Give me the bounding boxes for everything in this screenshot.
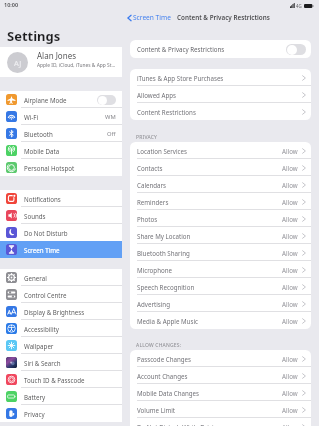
- staticText: WM: [105, 113, 116, 121]
- button[interactable]: Airplane Mode: [0, 91, 122, 108]
- button[interactable]: Account Changes: [130, 367, 311, 384]
- button[interactable]: Content Restrictions: [130, 103, 311, 120]
- staticText: Sounds: [24, 212, 122, 220]
- button[interactable]: Microphone: [130, 261, 311, 278]
- button[interactable]: Privacy: [0, 405, 122, 422]
- staticText: General: [24, 274, 122, 282]
- staticText: Allow: [282, 423, 298, 426]
- staticText: Calendars: [137, 181, 282, 189]
- button[interactable]: Control Centre: [0, 286, 122, 303]
- button[interactable]: Content & Privacy Restrictions: [130, 40, 311, 58]
- staticText: Apple ID, iCloud, iTunes & App St...: [37, 62, 116, 69]
- staticText: Allow: [282, 389, 298, 397]
- button[interactable]: Advertising: [130, 295, 311, 312]
- staticText: Wallpaper: [24, 342, 122, 350]
- staticText: Volume Limit: [137, 406, 282, 414]
- button[interactable]: Photos: [130, 210, 311, 227]
- staticText: Display & Brightness: [24, 308, 122, 316]
- staticText: Do Not Disturb: [24, 229, 122, 237]
- staticText: PRIVACY: [136, 134, 158, 141]
- staticText: Privacy: [24, 410, 122, 418]
- button[interactable]: Display & Brightness: [0, 303, 122, 320]
- staticText: Allow: [282, 266, 298, 274]
- button[interactable]: Speech Recognition: [130, 278, 311, 295]
- staticText: Allow: [282, 372, 298, 380]
- button[interactable]: Wallpaper: [0, 337, 122, 354]
- button[interactable]: Do Not Disturb While Driving: [130, 418, 311, 426]
- staticText: Personal Hotspot: [24, 164, 122, 172]
- staticText: Reminders: [137, 198, 282, 206]
- staticText: Allow: [282, 355, 298, 363]
- button[interactable]: Do Not Disturb: [0, 224, 122, 241]
- staticText: Account Changes: [137, 372, 282, 380]
- staticText: Media & Apple Music: [137, 317, 282, 325]
- button[interactable]: Mobile Data Changes: [130, 384, 311, 401]
- staticText: Mobile Data: [24, 147, 122, 155]
- button[interactable]: Personal Hotspot: [0, 159, 122, 176]
- button[interactable]: Allowed Apps: [130, 86, 311, 103]
- staticText: Allow: [282, 317, 298, 325]
- button[interactable]: Touch ID & Passcode: [0, 371, 122, 388]
- staticText: Allow: [282, 147, 298, 155]
- button[interactable]: Media & Apple Music: [130, 312, 311, 329]
- button[interactable]: Notifications: [0, 190, 122, 207]
- staticText: Allow: [282, 181, 298, 189]
- staticText: Photos: [137, 215, 282, 223]
- staticText: Notifications: [24, 195, 122, 203]
- staticText: Bluetooth: [24, 130, 107, 138]
- button[interactable]: Airplane Mode toggle: [97, 95, 116, 105]
- staticText: Allow: [282, 215, 298, 223]
- button[interactable]: Battery: [0, 388, 122, 405]
- button[interactable]: Reminders: [130, 193, 311, 210]
- button[interactable]: Calendars: [130, 176, 311, 193]
- button[interactable]: Screen Time: [127, 13, 171, 22]
- staticText: Screen Time: [133, 13, 171, 22]
- staticText: AJ: [14, 58, 22, 68]
- staticText: Allow: [282, 406, 298, 414]
- staticText: Off: [107, 130, 116, 138]
- staticText: Battery: [24, 393, 122, 401]
- button[interactable]: Passcode Changes: [130, 350, 311, 367]
- staticText: Wi-Fi: [24, 113, 105, 121]
- button[interactable]: AJ: [0, 47, 122, 77]
- button[interactable]: Bluetooth: [0, 125, 122, 142]
- button[interactable]: Bluetooth Sharing: [130, 244, 311, 261]
- button[interactable]: Mobile Data: [0, 142, 122, 159]
- staticText: Passcode Changes: [137, 355, 282, 363]
- staticText: iTunes & App Store Purchases: [137, 74, 298, 82]
- staticText: Accessibility: [24, 325, 122, 333]
- button[interactable]: Content & Privacy Restrictions toggle: [286, 44, 306, 55]
- button[interactable]: Location Services: [130, 142, 311, 159]
- staticText: ALLOW CHANGES:: [136, 342, 182, 349]
- staticText: Speech Recognition: [137, 283, 282, 291]
- staticText: Screen Time: [24, 246, 122, 254]
- button[interactable]: Volume Limit: [130, 401, 311, 418]
- staticText: Location Services: [137, 147, 282, 155]
- staticText: Allow: [282, 232, 298, 240]
- button[interactable]: Sounds: [0, 207, 122, 224]
- button[interactable]: iTunes & App Store Purchases: [130, 69, 311, 86]
- staticText: Mobile Data Changes: [137, 389, 282, 397]
- staticText: Airplane Mode: [24, 96, 97, 104]
- staticText: Content & Privacy Restrictions: [137, 45, 286, 53]
- button[interactable]: Wi-Fi: [0, 108, 122, 125]
- staticText: Contacts: [137, 164, 282, 172]
- button[interactable]: General: [0, 269, 122, 286]
- staticText: Allow: [282, 164, 298, 172]
- button[interactable]: Contacts: [130, 159, 311, 176]
- staticText: Content & Privacy Restrictions: [177, 13, 270, 22]
- staticText: Do Not Disturb While Driving: [137, 423, 282, 426]
- button[interactable]: Share My Location: [130, 227, 311, 244]
- staticText: Advertising: [137, 300, 282, 308]
- staticText: Touch ID & Passcode: [24, 376, 122, 384]
- button[interactable]: Screen Time: [0, 241, 122, 258]
- staticText: 10:00: [4, 1, 19, 8]
- staticText: Alan Jones: [37, 50, 76, 61]
- staticText: Control Centre: [24, 291, 122, 299]
- staticText: Content Restrictions: [137, 108, 298, 116]
- button[interactable]: Siri & Search: [0, 354, 122, 371]
- staticText: Allow: [282, 249, 298, 257]
- staticText: Allow: [282, 300, 298, 308]
- staticText: Allow: [282, 283, 298, 291]
- button[interactable]: Accessibility: [0, 320, 122, 337]
